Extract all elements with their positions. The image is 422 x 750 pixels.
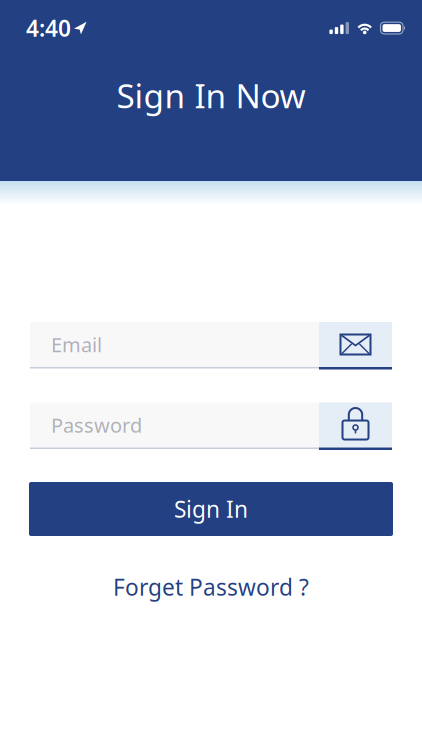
staticText: Sign In bbox=[174, 494, 248, 524]
button[interactable]: Sign In bbox=[29, 482, 393, 536]
staticText: Email bbox=[51, 331, 102, 358]
button[interactable]: Password bbox=[30, 402, 392, 450]
staticText: Password bbox=[51, 412, 142, 438]
button[interactable]: Forget Password ? bbox=[113, 572, 309, 602]
button[interactable]: Email bbox=[30, 322, 392, 369]
staticText: 4:40 bbox=[26, 13, 71, 43]
staticText: Sign In Now bbox=[116, 73, 305, 117]
staticText: Forget Password ? bbox=[113, 572, 309, 602]
